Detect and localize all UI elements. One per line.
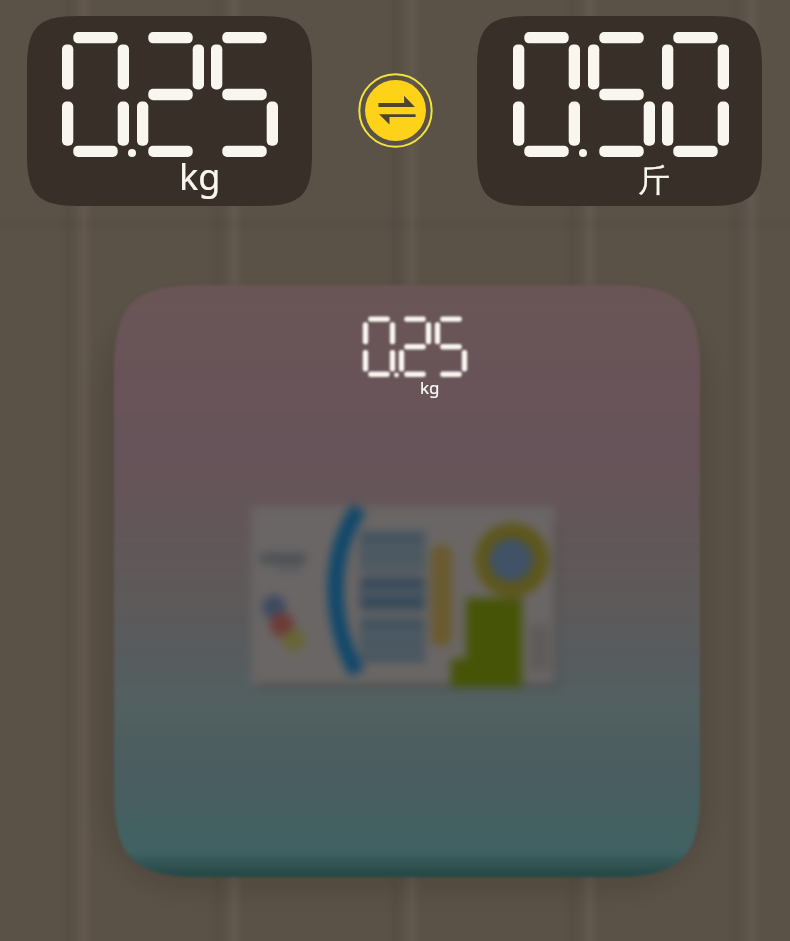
button[interactable]: Swap units (357, 72, 434, 149)
staticText: 斤 (638, 160, 670, 200)
staticText: kg (420, 376, 440, 399)
staticText: kg (179, 152, 221, 201)
